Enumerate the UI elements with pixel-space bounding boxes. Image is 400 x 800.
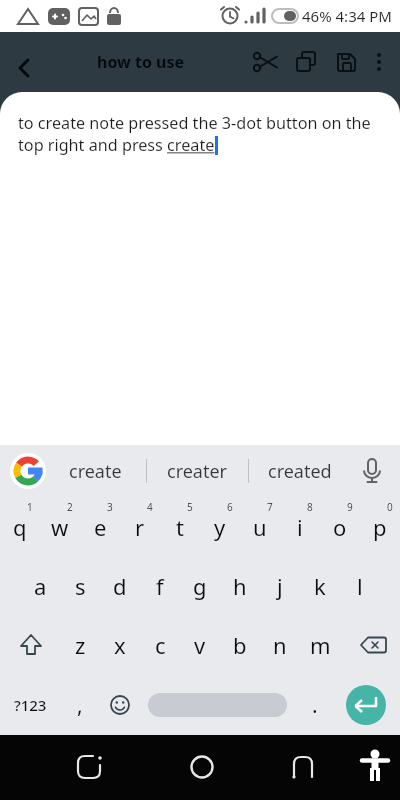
button[interactable]: x — [100, 615, 140, 675]
staticText: 8 — [307, 500, 313, 514]
button[interactable]: create — [44, 445, 146, 497]
button[interactable]: creater — [147, 445, 248, 497]
button[interactable]: y — [200, 497, 240, 556]
staticText: p — [373, 512, 387, 542]
button[interactable]: created — [249, 445, 350, 497]
staticText: t — [176, 512, 184, 542]
button[interactable]: ?123 — [0, 675, 60, 735]
staticText: 46% 4:34 PM — [302, 6, 392, 26]
staticText: k — [314, 571, 326, 601]
button[interactable]: k — [300, 556, 340, 615]
staticText: top right and press create — [18, 134, 215, 156]
button[interactable] — [0, 615, 60, 675]
staticText: i — [297, 512, 303, 542]
button[interactable]: m — [300, 615, 340, 675]
staticText: 4 — [147, 500, 153, 514]
staticText: o — [333, 512, 347, 542]
button[interactable]: w — [40, 497, 80, 556]
staticText: 5 — [187, 500, 193, 514]
button[interactable]: s — [60, 556, 100, 615]
button[interactable]: j — [260, 556, 300, 615]
button[interactable] — [326, 38, 366, 86]
staticText: n — [273, 630, 287, 660]
button[interactable]: b — [220, 615, 260, 675]
button[interactable]: h — [220, 556, 260, 615]
staticText: 2 — [67, 500, 73, 514]
staticText: f — [156, 571, 164, 601]
button[interactable] — [366, 38, 400, 86]
staticText: 7 — [267, 500, 273, 514]
staticText: 3 — [107, 500, 113, 514]
staticText: z — [75, 630, 86, 660]
button[interactable]: g — [180, 556, 220, 615]
button[interactable] — [200, 735, 300, 800]
button[interactable]: t — [160, 497, 200, 556]
button[interactable] — [356, 449, 400, 493]
button[interactable] — [0, 735, 100, 800]
staticText: x — [114, 630, 126, 660]
button[interactable]: o — [320, 497, 360, 556]
staticText: m — [310, 630, 331, 660]
staticText: to create note pressed the 3-dot button … — [18, 112, 371, 134]
button[interactable] — [246, 38, 286, 86]
staticText: creater — [167, 459, 228, 484]
staticText: w — [51, 512, 69, 542]
button[interactable]: z — [60, 615, 100, 675]
staticText: create — [69, 459, 122, 484]
button[interactable]: d — [100, 556, 140, 615]
button[interactable]: p — [360, 497, 400, 556]
staticText: j — [277, 571, 283, 601]
staticText: c — [155, 630, 166, 660]
button[interactable]: r — [120, 497, 160, 556]
button[interactable] — [0, 38, 48, 86]
button[interactable]: , — [60, 675, 100, 735]
staticText: e — [94, 512, 107, 542]
button[interactable] — [148, 693, 287, 717]
staticText: u — [253, 512, 267, 542]
button[interactable]: n — [260, 615, 300, 675]
staticText: 9 — [347, 500, 353, 514]
staticText: b — [233, 630, 247, 660]
staticText: 0 — [387, 500, 393, 514]
staticText: a — [34, 571, 47, 601]
staticText: created — [268, 459, 332, 484]
staticText: r — [135, 512, 145, 542]
button[interactable] — [286, 38, 326, 86]
button[interactable]: i — [280, 497, 320, 556]
button[interactable] — [340, 615, 400, 675]
button[interactable] — [335, 675, 400, 735]
button[interactable] — [100, 735, 200, 800]
staticText: ?123 — [14, 695, 47, 715]
button[interactable]: c — [140, 615, 180, 675]
button[interactable]: . — [295, 675, 335, 735]
staticText: g — [193, 571, 207, 601]
button[interactable] — [300, 735, 400, 800]
button[interactable] — [100, 675, 140, 735]
staticText: y — [214, 512, 226, 542]
staticText: how to use — [97, 51, 185, 73]
staticText: . — [312, 691, 318, 720]
staticText: q — [13, 512, 27, 542]
staticText: 6 — [227, 500, 233, 514]
button[interactable]: q — [0, 497, 40, 556]
button[interactable]: v — [180, 615, 220, 675]
staticText: d — [113, 571, 127, 601]
button[interactable]: f — [140, 556, 180, 615]
staticText: h — [233, 571, 247, 601]
staticText: 1 — [27, 500, 33, 514]
staticText: s — [75, 571, 86, 601]
button[interactable]: a — [20, 556, 60, 615]
staticText: , — [77, 691, 83, 720]
staticText: v — [194, 630, 206, 660]
button[interactable]: l — [340, 556, 380, 615]
button[interactable] — [8, 453, 44, 489]
button[interactable]: e — [80, 497, 120, 556]
staticText: l — [357, 571, 363, 601]
button[interactable]: u — [240, 497, 280, 556]
